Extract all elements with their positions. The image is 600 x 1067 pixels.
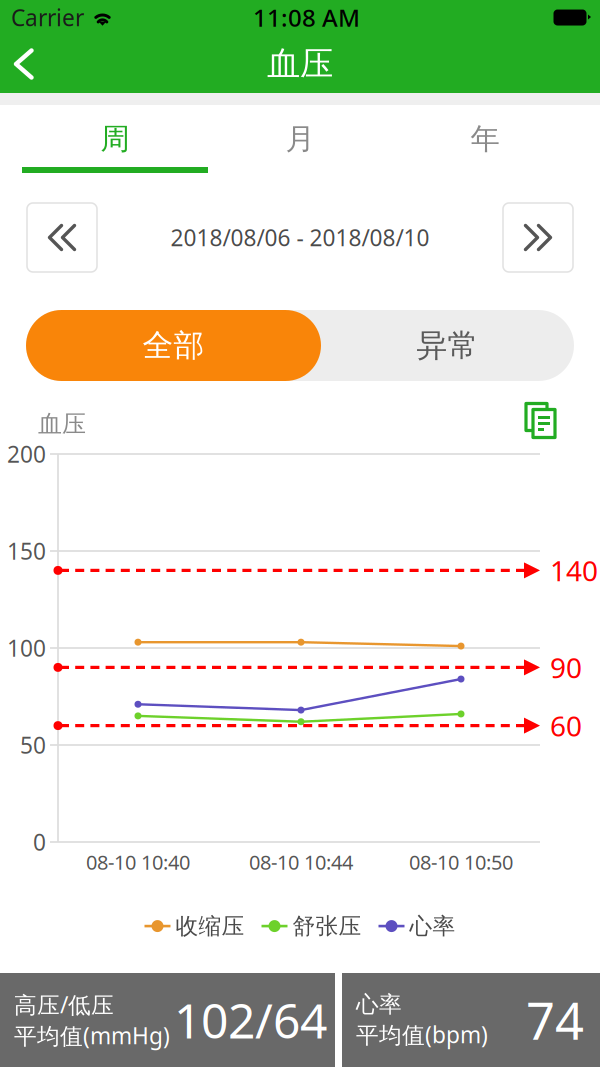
staticText: 异常	[416, 327, 478, 364]
staticText: 60	[550, 707, 582, 744]
button[interactable]: 周	[22, 105, 208, 173]
button[interactable]: Next period	[503, 203, 573, 272]
button[interactable]: Previous period	[27, 203, 97, 272]
staticText: 11:08 AM	[253, 2, 360, 33]
staticText: 150	[7, 536, 46, 566]
staticText: 全部	[142, 327, 204, 364]
staticText: 舒张压	[292, 912, 361, 940]
staticText: 102/64	[174, 988, 327, 1052]
staticText: 心率	[409, 912, 455, 940]
staticText: 月	[285, 121, 314, 157]
staticText: 140	[550, 552, 598, 589]
staticText: 高压/低压	[14, 989, 114, 1019]
staticText: 0	[33, 827, 46, 857]
staticText: 2018/08/06 - 2018/08/10	[170, 222, 429, 252]
staticText: 周	[100, 121, 129, 157]
staticText: 08-10 10:40	[86, 849, 190, 875]
button[interactable]: 年	[392, 105, 578, 173]
staticText: 平均值(mmHg)	[14, 1020, 170, 1051]
staticText: 血压	[38, 409, 86, 439]
staticText: Carrier	[11, 2, 84, 32]
staticText: 50	[20, 730, 46, 760]
staticText: 200	[7, 439, 46, 469]
staticText: 90	[550, 649, 582, 686]
button[interactable]: Back	[0, 35, 50, 93]
button[interactable]: Records	[524, 401, 558, 440]
staticText: 血压	[267, 43, 333, 84]
staticText: 08-10 10:50	[409, 849, 513, 875]
staticText: 08-10 10:44	[249, 849, 353, 875]
staticText: 100	[7, 633, 46, 663]
staticText: 年	[470, 121, 499, 157]
button[interactable]: 月	[207, 105, 393, 173]
button[interactable]: 全部	[26, 310, 321, 381]
staticText: 心率	[356, 990, 402, 1018]
staticText: 74	[526, 986, 584, 1054]
staticText: 平均值(bpm)	[356, 1019, 488, 1049]
staticText: 收缩压	[175, 912, 244, 940]
button[interactable]: 异常	[321, 310, 574, 381]
